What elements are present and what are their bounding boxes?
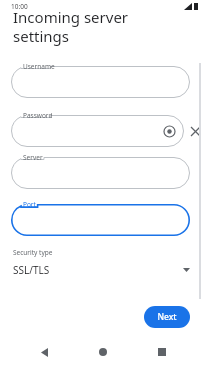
button[interactable]: Security type [0, 248, 206, 277]
button[interactable]: Home [88, 338, 118, 366]
button[interactable]: Port [11, 204, 190, 236]
button[interactable]: Username [11, 66, 190, 98]
staticText: Port [23, 200, 36, 209]
button[interactable]: Clear password [184, 118, 206, 144]
staticText: Incoming server settings [13, 7, 129, 46]
button[interactable]: Server [11, 157, 190, 189]
button[interactable]: Back [29, 338, 59, 366]
button[interactable]: Password [11, 115, 184, 147]
button[interactable]: Next [144, 306, 190, 328]
button[interactable]: Show password [162, 124, 176, 138]
staticText: 10:00 [11, 2, 28, 11]
staticText: Next [157, 311, 177, 323]
staticText: Username [23, 62, 55, 71]
button[interactable]: Recent apps [147, 338, 177, 366]
staticText: Server [23, 153, 43, 162]
staticText: SSL/TLS [13, 263, 50, 277]
staticText: Security type [13, 248, 53, 257]
staticText: Password [23, 111, 53, 120]
